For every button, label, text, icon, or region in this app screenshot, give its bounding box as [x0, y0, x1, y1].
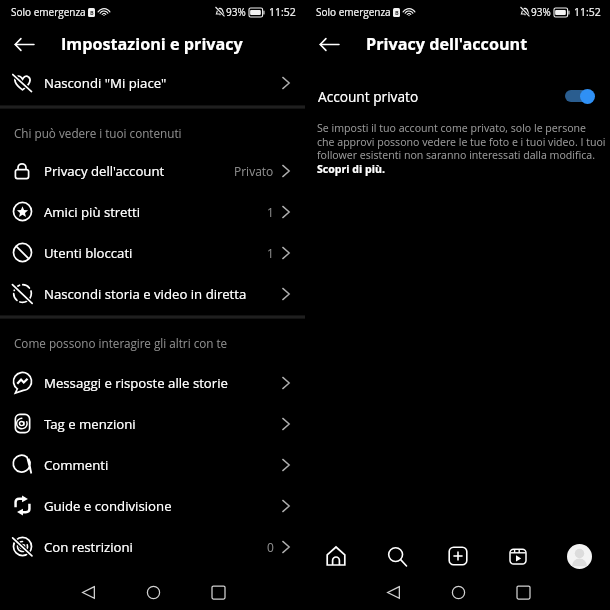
staticText: 1 [267, 245, 274, 261]
staticText: Utenti bloccati [44, 244, 260, 262]
staticText: Account privato [318, 87, 565, 106]
staticText: 1 [267, 204, 274, 220]
button[interactable]: Indietro [66, 574, 110, 610]
button[interactable]: Tag e menzioni [0, 403, 305, 444]
staticText: Nascondi "Mi piace" [44, 74, 267, 92]
button[interactable]: Panoramica [501, 574, 545, 610]
button[interactable]: Con restrizioni [0, 526, 305, 567]
button[interactable]: Privacy dell'account [0, 150, 305, 191]
staticText: 0 [267, 539, 274, 555]
staticText: B [395, 9, 399, 16]
button[interactable]: Amici più stretti [0, 191, 305, 232]
staticText: Tag e menzioni [44, 415, 267, 433]
button[interactable]: Home [314, 534, 358, 578]
staticText: B [90, 9, 94, 16]
button[interactable]: Crea [436, 534, 480, 578]
staticText: Impostazioni e privacy [61, 33, 243, 55]
staticText: Come possono interagire gli altri con te [14, 335, 228, 351]
staticText: Messaggi e risposte alle storie [44, 374, 267, 392]
button[interactable]: Utenti bloccati [0, 232, 305, 273]
button[interactable]: Guide e condivisione [0, 485, 305, 526]
button[interactable]: Cerca [375, 534, 419, 578]
button[interactable]: Reels [496, 534, 540, 578]
staticText: Nascondi storia e video in diretta [44, 285, 267, 303]
staticText: Solo emergenza [316, 5, 391, 19]
button[interactable]: Account privato [305, 79, 610, 113]
staticText: 11:52 [574, 5, 601, 19]
staticText: 93% [531, 5, 551, 19]
button[interactable]: Nascondi storia e video in diretta [0, 273, 305, 314]
button[interactable]: Indietro [305, 24, 354, 64]
button[interactable]: Profilo [557, 534, 601, 578]
button[interactable]: Indietro [371, 574, 415, 610]
staticText: Privacy dell'account [366, 33, 528, 55]
staticText: 11:52 [269, 5, 296, 19]
button[interactable]: Indietro [0, 24, 49, 64]
staticText: Privacy dell'account [44, 162, 227, 180]
button[interactable]: Nascondi "Mi piace" [0, 64, 305, 101]
button[interactable]: Commenti [0, 444, 305, 485]
staticText: Se imposti il tuo account come privato, … [317, 121, 606, 162]
button[interactable]: Scopri di più. [317, 162, 385, 176]
staticText: Con restrizioni [44, 538, 260, 556]
button[interactable]: Panoramica [196, 574, 240, 610]
staticText: Commenti [44, 456, 267, 474]
staticText: Chi può vedere i tuoi contenuti [14, 125, 182, 141]
staticText: Guide e condivisione [44, 497, 267, 515]
button[interactable]: Home [131, 574, 175, 610]
staticText: Amici più stretti [44, 203, 260, 221]
staticText: 93% [226, 5, 246, 19]
staticText: Privato [234, 163, 274, 179]
button[interactable]: Messaggi e risposte alle storie [0, 362, 305, 403]
staticText: Solo emergenza [11, 5, 86, 19]
button[interactable]: Home [436, 574, 480, 610]
